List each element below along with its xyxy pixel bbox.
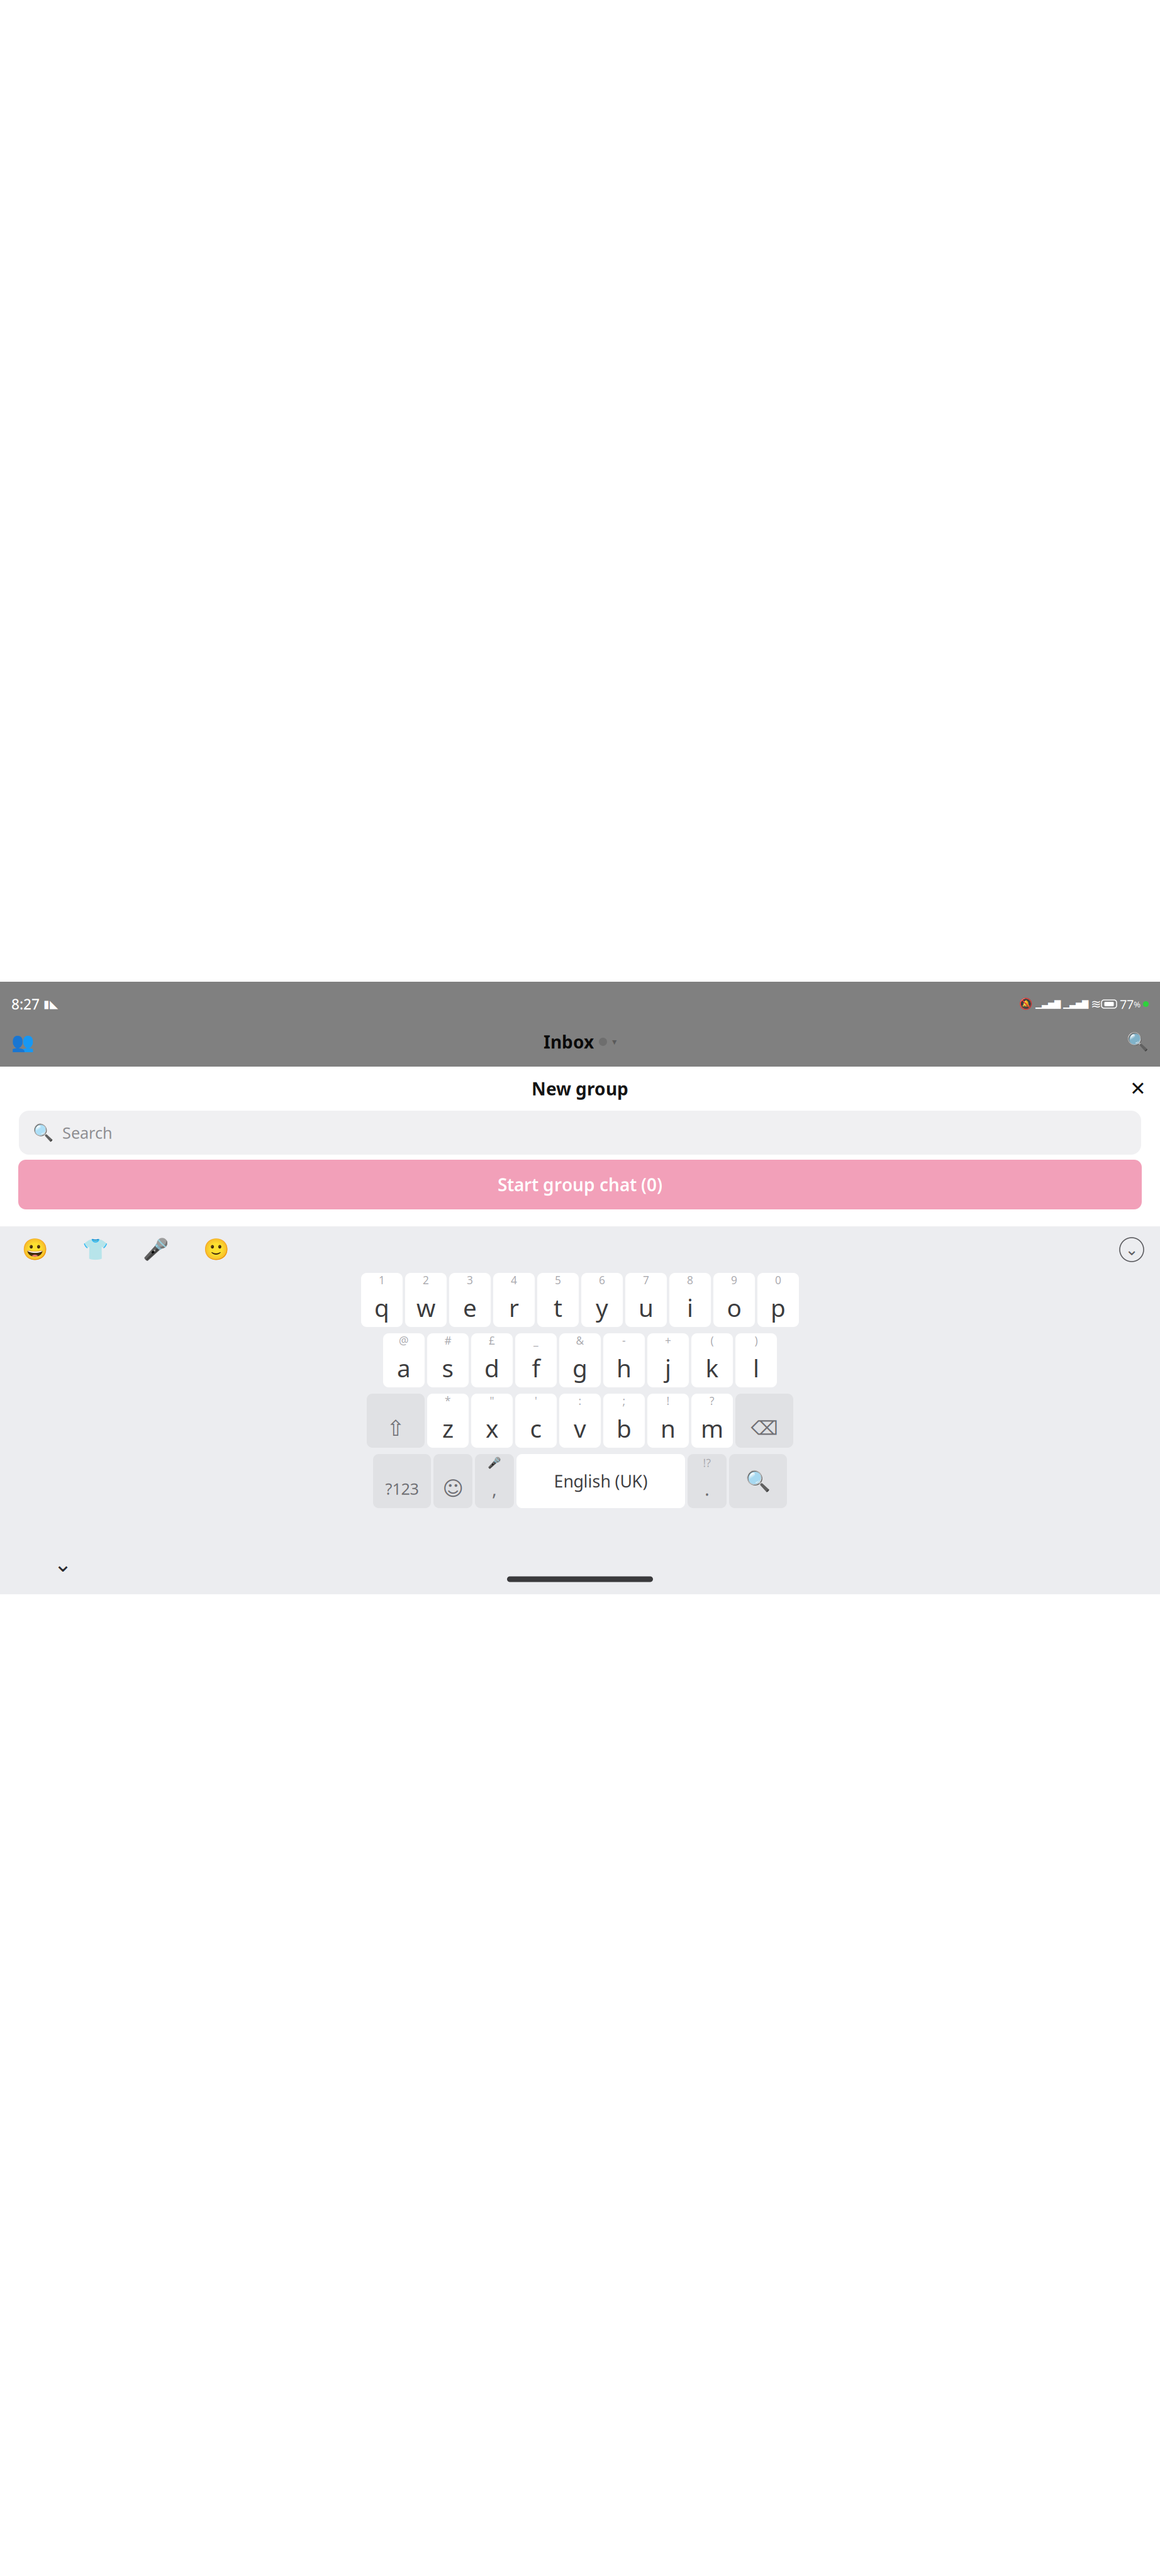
- staticText: m: [701, 1412, 723, 1444]
- staticText: 3: [467, 1273, 473, 1287]
- button[interactable]: Close: [1124, 1074, 1152, 1103]
- button[interactable]: !: [647, 1394, 689, 1448]
- staticText: English (UK): [554, 1470, 648, 1492]
- button[interactable]: #: [427, 1333, 469, 1387]
- button[interactable]: 3: [449, 1273, 491, 1327]
- staticText: 🔍: [745, 1470, 771, 1493]
- staticText: 5: [555, 1273, 561, 1287]
- button[interactable]: Search: [1124, 1028, 1151, 1056]
- button[interactable]: ): [735, 1333, 777, 1387]
- staticText: g: [572, 1352, 588, 1384]
- button[interactable]: 2: [405, 1273, 447, 1327]
- staticText: c: [530, 1412, 542, 1444]
- staticText: ': [535, 1394, 537, 1408]
- staticText: New group: [532, 1077, 628, 1100]
- staticText: w: [416, 1291, 435, 1324]
- staticText: 🙂: [203, 1238, 230, 1262]
- staticText: #: [444, 1333, 451, 1348]
- staticText: q: [374, 1291, 389, 1324]
- button[interactable]: Keyboard option: [126, 1230, 186, 1270]
- button[interactable]: +: [647, 1333, 689, 1387]
- staticText: _: [533, 1333, 538, 1348]
- staticText: 👥: [11, 1031, 34, 1052]
- button[interactable]: :: [559, 1394, 601, 1448]
- staticText: *: [445, 1394, 451, 1408]
- button[interactable]: @: [383, 1333, 425, 1387]
- staticText: -: [622, 1333, 626, 1348]
- button[interactable]: 8: [669, 1273, 711, 1327]
- staticText: d: [484, 1352, 499, 1384]
- staticText: +: [665, 1333, 671, 1348]
- button[interactable]: Backspace: [735, 1394, 793, 1448]
- button[interactable]: Period: [688, 1454, 727, 1508]
- staticText: ⌄: [1125, 1241, 1138, 1259]
- button[interactable]: 9: [713, 1273, 755, 1327]
- staticText: t: [554, 1291, 562, 1324]
- button[interactable]: 1: [361, 1273, 403, 1327]
- staticText: r: [509, 1291, 519, 1324]
- button[interactable]: _: [515, 1333, 557, 1387]
- staticText: ▮◣: [40, 998, 58, 1010]
- button[interactable]: Search: [729, 1454, 787, 1508]
- staticText: ): [755, 1333, 758, 1348]
- staticText: 0: [775, 1273, 781, 1287]
- button[interactable]: 🔍: [19, 1111, 1141, 1155]
- button[interactable]: ': [515, 1394, 557, 1448]
- button[interactable]: 6: [581, 1273, 623, 1327]
- staticText: ⇧: [387, 1416, 405, 1441]
- staticText: £: [489, 1333, 495, 1348]
- staticText: b: [616, 1412, 632, 1444]
- staticText: .: [705, 1476, 710, 1501]
- button[interactable]: Comma: [475, 1454, 514, 1508]
- button[interactable]: *: [427, 1394, 469, 1448]
- button[interactable]: &: [559, 1333, 601, 1387]
- staticText: 6: [599, 1273, 605, 1287]
- staticText: k: [705, 1352, 719, 1384]
- staticText: 🔍: [33, 1123, 53, 1142]
- staticText: ;: [622, 1394, 626, 1408]
- staticText: ": [490, 1394, 494, 1408]
- button[interactable]: Space, English UK: [516, 1454, 685, 1508]
- staticText: y: [596, 1291, 608, 1324]
- button[interactable]: £: [471, 1333, 513, 1387]
- staticText: 4: [511, 1273, 517, 1287]
- staticText: x: [486, 1412, 498, 1444]
- staticText: f: [532, 1352, 540, 1384]
- staticText: ▁▃▅▇ ▁▃▅▇: [1033, 999, 1091, 1009]
- button[interactable]: New group: [9, 1028, 36, 1056]
- staticText: 77: [1117, 996, 1134, 1012]
- button[interactable]: Symbols: [373, 1454, 431, 1508]
- staticText: z: [442, 1412, 454, 1444]
- staticText: 🎤: [143, 1238, 169, 1262]
- button[interactable]: (: [691, 1333, 733, 1387]
- button[interactable]: ;: [603, 1394, 645, 1448]
- staticText: ?123: [385, 1478, 419, 1499]
- button[interactable]: Emoji: [433, 1454, 472, 1508]
- button[interactable]: Keyboard option: [5, 1230, 65, 1270]
- staticText: &: [576, 1333, 584, 1348]
- staticText: !?: [703, 1456, 711, 1470]
- staticText: :: [578, 1394, 582, 1408]
- staticText: @: [399, 1333, 409, 1348]
- button[interactable]: 0: [757, 1273, 799, 1327]
- button[interactable]: Start group chat (0): [18, 1160, 1142, 1209]
- button[interactable]: ?: [691, 1394, 733, 1448]
- staticText: e: [463, 1291, 477, 1324]
- button[interactable]: 4: [493, 1273, 535, 1327]
- staticText: 7: [643, 1273, 649, 1287]
- button[interactable]: 5: [537, 1273, 579, 1327]
- button[interactable]: ": [471, 1394, 513, 1448]
- button[interactable]: Keyboard option: [186, 1230, 247, 1270]
- button[interactable]: -: [603, 1333, 645, 1387]
- staticText: s: [442, 1352, 454, 1384]
- staticText: ⌫: [751, 1417, 778, 1439]
- staticText: (: [711, 1333, 714, 1348]
- staticText: 2: [423, 1273, 429, 1287]
- button[interactable]: Shift: [367, 1394, 425, 1448]
- button[interactable]: Keyboard option: [65, 1230, 126, 1270]
- button[interactable]: Collapse keyboard: [1108, 1230, 1155, 1270]
- staticText: %: [1134, 998, 1140, 1010]
- button[interactable]: Hide keyboard: [44, 1548, 82, 1580]
- staticText: 8: [687, 1273, 693, 1287]
- button[interactable]: 7: [625, 1273, 667, 1327]
